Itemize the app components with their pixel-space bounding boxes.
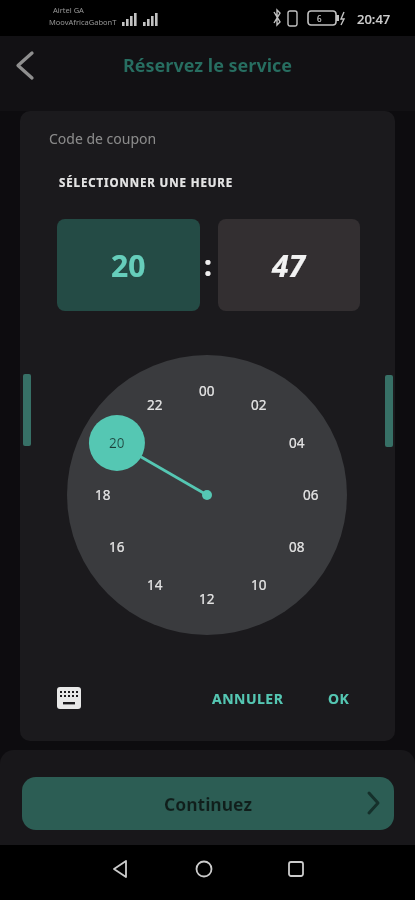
staticText: 04 — [289, 434, 305, 452]
staticText: : — [204, 246, 212, 284]
button[interactable] — [184, 850, 224, 888]
staticText: 20:47 — [357, 10, 391, 27]
staticText: 18 — [95, 486, 111, 504]
button[interactable] — [276, 850, 316, 888]
staticText: 14 — [147, 576, 163, 594]
button[interactable]: ANNULER — [210, 688, 286, 708]
button[interactable]: 20 — [57, 219, 200, 311]
staticText: 20 — [111, 245, 146, 286]
button[interactable]: Continuez — [22, 777, 394, 830]
staticText: 16 — [109, 538, 125, 556]
button[interactable]: OK — [322, 688, 356, 708]
staticText: OK — [328, 689, 350, 708]
staticText: SÉLECTIONNER UNE HEURE — [59, 175, 234, 191]
button[interactable]: Code de coupon — [49, 128, 229, 148]
staticText: 6 — [317, 13, 322, 24]
staticText: 00 — [199, 382, 215, 400]
staticText: 08 — [289, 538, 305, 556]
staticText: 12 — [199, 590, 215, 608]
button[interactable] — [52, 682, 86, 714]
staticText: Code de coupon — [49, 129, 157, 148]
staticText: 20 — [109, 434, 125, 452]
button[interactable]: 47 — [218, 219, 360, 311]
staticText: 22 — [147, 396, 163, 414]
staticText: MoovAfricaGabonT — [49, 17, 117, 27]
button[interactable] — [8, 48, 44, 84]
staticText: ANNULER — [212, 689, 284, 708]
staticText: 02 — [251, 396, 267, 414]
staticText: Réservez le service — [123, 53, 293, 78]
staticText: 10 — [251, 576, 267, 594]
staticText: Continuez — [164, 792, 253, 816]
staticText: 47 — [272, 245, 306, 286]
staticText: 06 — [303, 486, 319, 504]
button[interactable] — [100, 850, 140, 888]
staticText: Airtel GA — [53, 5, 84, 15]
